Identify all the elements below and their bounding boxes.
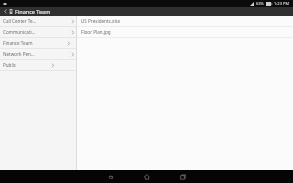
button[interactable]: Back	[104, 170, 118, 183]
button[interactable]: Home	[140, 170, 154, 183]
button[interactable]: US Presidents.xlsx	[77, 16, 293, 26]
button[interactable]: Communications Team	[0, 27, 76, 37]
staticText: Finance Team	[3, 40, 33, 46]
button[interactable]: Public	[0, 60, 76, 70]
staticText: Floor Plan.jpg	[81, 29, 111, 35]
staticText: 1:23 PM	[274, 1, 290, 6]
staticText: Communications Team	[3, 29, 37, 35]
button[interactable]: Recent apps	[176, 170, 190, 183]
staticText: Finance Team	[15, 8, 51, 15]
button[interactable]: Finance Team	[0, 38, 76, 48]
button[interactable]: Floor Plan.jpg	[77, 27, 293, 37]
button[interactable]: Network Penetration Team	[0, 49, 76, 59]
staticText: Public	[3, 62, 17, 68]
staticText: US Presidents.xlsx	[81, 18, 121, 24]
button[interactable]: Call Center Team	[0, 16, 76, 26]
button[interactable]: Back	[2, 7, 9, 16]
staticText: Network Penetration Team	[3, 51, 37, 57]
staticText: Call Center Team	[3, 18, 37, 24]
staticText: 63%	[256, 1, 264, 6]
